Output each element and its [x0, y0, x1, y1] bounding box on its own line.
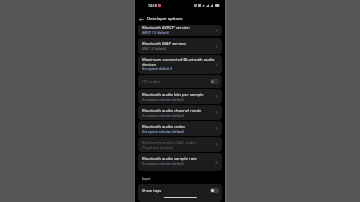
- button[interactable]: Maximum connected Bluetooth audio device…: [138, 55, 222, 74]
- staticText: Use system selection (default): [142, 114, 184, 118]
- staticText: Use system selection (default): [142, 130, 184, 134]
- staticText: Bluetooth audio channel mode: [142, 108, 202, 114]
- staticText: Use system default: 5: [142, 67, 173, 71]
- button[interactable]: Bluetooth audio codec: [138, 121, 222, 136]
- button[interactable]: Bluetooth AVRCP version: [138, 25, 222, 36]
- button[interactable]: Back: [135, 13, 147, 25]
- button[interactable]: Bluetooth audio sample rate: [138, 153, 222, 171]
- staticText: Bluetooth audio codec: [142, 124, 186, 130]
- staticText: HD audio: [142, 79, 160, 84]
- button[interactable]: HD audio: [138, 75, 222, 88]
- staticText: Maximum connected Bluetooth audio device…: [142, 57, 215, 67]
- staticText: Bluetooth MAP version: [142, 41, 187, 47]
- staticText: MAP 1.2 (default): [142, 47, 167, 51]
- staticText: Bluetooth audio bits per sample: [142, 92, 204, 98]
- staticText: Use system selection (default): [142, 98, 184, 102]
- staticText: Bluetooth audio LDAC codec: Playback qua…: [142, 140, 198, 150]
- staticText: Developer options: [147, 16, 183, 22]
- button[interactable]: Show taps: [138, 184, 222, 202]
- button[interactable]: Bluetooth audio channel mode: [138, 105, 222, 120]
- staticText: Bluetooth audio sample rate: [142, 156, 197, 162]
- staticText: Input: [142, 176, 151, 180]
- staticText: Use system selection (default): [142, 162, 184, 166]
- staticText: Bluetooth AVRCP version: [142, 25, 190, 31]
- staticText: AVRCP 1.5 (default): [142, 31, 169, 35]
- staticText: 14:18: [148, 3, 157, 8]
- staticText: Show taps: [142, 188, 162, 193]
- button[interactable]: Bluetooth audio LDAC codec: Playback qua…: [138, 137, 222, 152]
- button[interactable]: Bluetooth MAP version: [138, 38, 222, 54]
- button[interactable]: Bluetooth audio bits per sample: [138, 89, 222, 104]
